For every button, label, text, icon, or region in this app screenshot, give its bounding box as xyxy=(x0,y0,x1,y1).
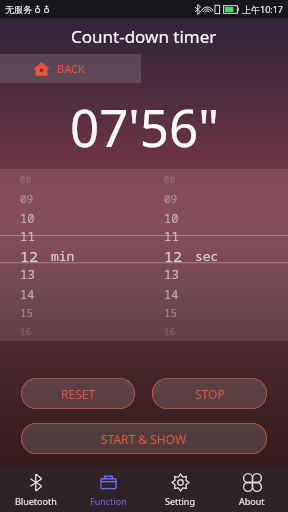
staticText: 09 xyxy=(20,191,34,206)
staticText: 16 xyxy=(20,325,32,338)
staticText: 上午10:17 xyxy=(242,3,284,15)
button[interactable]: 08 xyxy=(144,169,288,341)
staticText: 10 xyxy=(20,210,35,226)
staticText: START & SHOW xyxy=(101,431,187,447)
staticText: 14 xyxy=(20,286,35,302)
staticText: 09 xyxy=(164,191,178,206)
staticText: 11 xyxy=(20,228,36,245)
staticText: 16 xyxy=(164,325,176,338)
staticText: STOP xyxy=(195,386,225,402)
staticText: Count-down timer xyxy=(71,25,217,48)
button[interactable]: Setting xyxy=(144,468,216,512)
button[interactable]: START & SHOW xyxy=(21,423,267,454)
staticText: About xyxy=(239,495,265,507)
staticText: 12 xyxy=(20,246,39,265)
button[interactable]: About xyxy=(216,468,288,512)
staticText: Function xyxy=(90,495,127,507)
button[interactable]: 08 xyxy=(0,169,144,341)
staticText: 11 xyxy=(164,228,180,245)
staticText: Bluetooth xyxy=(15,495,57,507)
button[interactable]: STOP xyxy=(152,378,267,409)
staticText: 12 xyxy=(164,246,183,265)
staticText: 15 xyxy=(164,305,178,320)
staticText: 08 xyxy=(164,173,176,186)
staticText: RESET xyxy=(61,386,96,402)
staticText: min xyxy=(51,247,75,265)
staticText: 无服务 ♁ ♁ xyxy=(5,3,50,15)
staticText: Setting xyxy=(165,495,195,507)
staticText: 15 xyxy=(20,305,34,320)
staticText: BACK xyxy=(57,61,85,76)
staticText: sec xyxy=(195,247,219,265)
staticText: 13 xyxy=(164,266,180,283)
button[interactable]: BACK xyxy=(0,54,141,83)
button[interactable]: Bluetooth xyxy=(0,468,72,512)
staticText: 07'56" xyxy=(70,92,219,161)
staticText: 08 xyxy=(20,173,32,186)
staticText: 13 xyxy=(20,266,36,283)
staticText: 10 xyxy=(164,210,179,226)
button[interactable]: RESET xyxy=(21,378,135,409)
staticText: 14 xyxy=(164,286,179,302)
button[interactable]: Function xyxy=(72,468,144,512)
